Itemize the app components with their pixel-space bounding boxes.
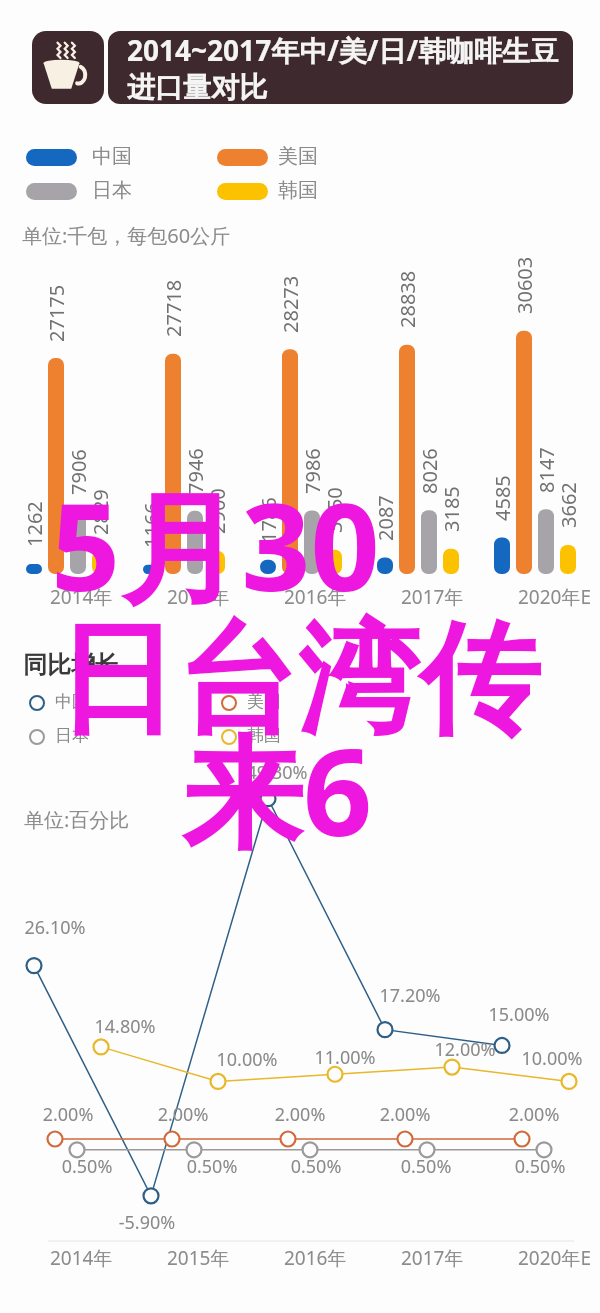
staticText: 美国 (278, 144, 318, 169)
staticText: 1166 (138, 438, 160, 548)
staticText: 10.00% (197, 1047, 297, 1072)
staticText: 14.80% (75, 1014, 175, 1039)
staticText: 日本 (55, 725, 89, 746)
staticText: 2015年 (167, 584, 230, 610)
staticText: 韩国 (247, 725, 281, 746)
button[interactable]: 日本 (26, 183, 77, 200)
staticText: 27175 (43, 232, 65, 342)
staticText: 26.10% (5, 915, 105, 940)
button[interactable]: 中国 (28, 694, 46, 712)
staticText: 中国 (92, 144, 132, 169)
staticText: 5月30 (51, 462, 380, 627)
staticText: 30603 (511, 204, 533, 314)
staticText: 2.00% (355, 1102, 455, 1127)
button[interactable]: 2014~2017年中/美/日/韩咖啡生豆 进口量对比 (108, 31, 573, 104)
staticText: 2.00% (250, 1102, 350, 1127)
staticText: 来6 (182, 707, 373, 872)
staticText: 日本 (92, 178, 132, 203)
staticText: 7946 (182, 384, 204, 494)
staticText: 0.50% (376, 1154, 476, 1179)
staticText: 2087 (372, 431, 394, 541)
staticText: 28273 (277, 223, 299, 333)
staticText: 3662 (555, 418, 577, 528)
staticText: 3185 (438, 422, 460, 532)
staticText: 0.50% (37, 1154, 137, 1179)
button[interactable]: Coffee (32, 31, 104, 104)
staticText: 2014年 (50, 1245, 113, 1271)
button[interactable]: 日本 (28, 728, 46, 746)
button[interactable]: 韩国 (217, 183, 268, 200)
staticText: 韩国 (278, 178, 318, 203)
button[interactable]: 中国 (26, 149, 77, 166)
button[interactable]: 美国 (220, 694, 238, 712)
staticText: 1786 (255, 433, 277, 543)
staticText: 日台湾传 (56, 604, 540, 756)
staticText: 2.00% (484, 1102, 584, 1127)
staticText: 2016年 (284, 1245, 347, 1271)
staticText: 7986 (299, 384, 321, 494)
staticText: 2014~2017年中/美/日/韩咖啡生豆 进口量对比 (127, 31, 559, 104)
staticText: 4585 (489, 411, 511, 521)
staticText: 17.20% (360, 983, 460, 1008)
staticText: 2.00% (18, 1102, 118, 1127)
staticText: 8026 (416, 384, 438, 494)
staticText: 2900 (204, 424, 226, 534)
staticText: 0.50% (266, 1154, 366, 1179)
staticText: 2020年E (518, 584, 592, 610)
staticText: 2015年 (167, 1245, 230, 1271)
staticText: 15.00% (469, 1002, 569, 1027)
staticText: 2017年 (401, 1245, 464, 1271)
staticText: 1262 (21, 437, 43, 547)
button[interactable]: 韩国 (220, 728, 238, 746)
staticText: 0.50% (162, 1154, 262, 1179)
staticText: 2017年 (401, 584, 464, 610)
staticText: 同比增长 (23, 650, 119, 680)
staticText: 27718 (160, 227, 182, 337)
staticText: 中国 (55, 691, 89, 712)
staticText: 美国 (247, 691, 281, 712)
staticText: 单位:百分比 (24, 806, 130, 833)
button[interactable]: 美国 (217, 149, 268, 166)
staticText: 2829 (87, 425, 109, 535)
staticText: 7906 (65, 385, 87, 495)
staticText: -5.90% (97, 1210, 197, 1235)
staticText: 2014年 (50, 584, 113, 610)
staticText: 49.30% (227, 760, 327, 785)
staticText: 11.00% (295, 1045, 395, 1070)
staticText: 10.00% (502, 1046, 600, 1071)
staticText: 3050 (321, 423, 343, 533)
staticText: 28838 (394, 218, 416, 328)
staticText: 2.00% (133, 1102, 233, 1127)
staticText: 2016年 (284, 584, 347, 610)
staticText: 单位:千包，每包60公斤 (22, 222, 231, 249)
staticText: 0.50% (490, 1154, 590, 1179)
staticText: 8147 (533, 383, 555, 493)
staticText: 2020年E (518, 1245, 592, 1271)
staticText: 12.00% (415, 1037, 515, 1062)
